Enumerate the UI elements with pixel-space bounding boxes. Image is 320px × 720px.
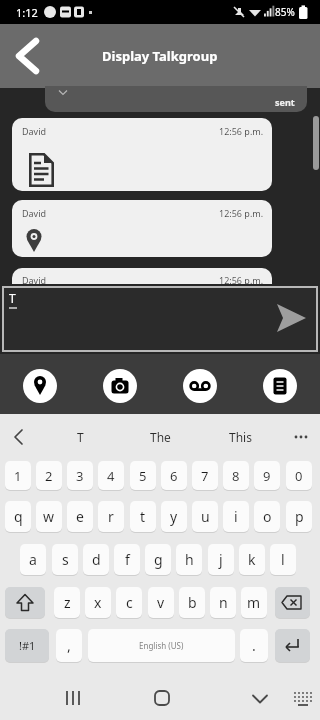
staticText: David — [22, 125, 47, 137]
button[interactable] — [5, 587, 45, 618]
button[interactable] — [254, 461, 280, 490]
staticText: 85% — [275, 5, 295, 19]
button[interactable] — [286, 461, 312, 490]
button[interactable] — [286, 501, 312, 532]
button[interactable] — [145, 544, 171, 575]
staticText: 1 — [14, 467, 22, 485]
button[interactable] — [239, 544, 265, 575]
button[interactable] — [263, 369, 297, 403]
button[interactable] — [130, 461, 156, 490]
button[interactable] — [161, 501, 187, 532]
staticText: David — [22, 274, 47, 286]
button[interactable] — [223, 461, 249, 490]
staticText: Display Talkgroup — [102, 47, 218, 65]
button[interactable] — [36, 501, 62, 532]
button[interactable] — [88, 629, 235, 662]
button[interactable] — [275, 587, 310, 618]
button[interactable] — [241, 684, 279, 714]
button[interactable] — [54, 684, 92, 714]
button[interactable] — [288, 684, 318, 714]
staticText: t — [140, 507, 146, 526]
staticText: T — [77, 429, 84, 445]
button[interactable]: David — [12, 268, 272, 308]
staticText: i — [234, 507, 238, 526]
staticText: !#1 — [19, 638, 36, 653]
staticText: David — [22, 207, 47, 219]
staticText: 0 — [295, 467, 303, 485]
button[interactable] — [240, 629, 268, 662]
button[interactable] — [5, 501, 31, 532]
button[interactable] — [98, 501, 124, 532]
button[interactable] — [148, 587, 174, 618]
staticText: The — [150, 429, 171, 445]
button[interactable] — [210, 587, 236, 618]
staticText: . — [252, 636, 256, 655]
staticText: f — [125, 550, 130, 569]
button[interactable]: David — [12, 200, 272, 257]
staticText: v — [157, 593, 165, 612]
button[interactable] — [85, 587, 111, 618]
button[interactable] — [241, 587, 267, 618]
button[interactable] — [288, 424, 316, 450]
button[interactable] — [5, 461, 31, 490]
button[interactable] — [192, 501, 218, 532]
staticText: 5 — [139, 467, 147, 485]
staticText: q — [14, 507, 23, 526]
button[interactable]: David — [12, 118, 272, 191]
staticText: 2 — [45, 467, 53, 485]
button[interactable] — [183, 369, 217, 403]
staticText: 4 — [107, 467, 115, 485]
button[interactable] — [161, 461, 187, 490]
button[interactable] — [208, 544, 234, 575]
staticText: This — [229, 429, 252, 445]
staticText: d — [92, 550, 101, 569]
button[interactable] — [192, 461, 218, 490]
button[interactable] — [52, 544, 78, 575]
staticText: g — [154, 550, 163, 569]
button[interactable] — [4, 424, 34, 450]
button[interactable] — [116, 587, 142, 618]
button[interactable] — [98, 461, 124, 490]
button[interactable] — [179, 587, 205, 618]
staticText: j — [219, 550, 223, 569]
button[interactable] — [114, 544, 140, 575]
button[interactable]: This — [216, 424, 264, 450]
button[interactable] — [54, 587, 80, 618]
staticText: 8 — [232, 467, 240, 485]
button[interactable] — [56, 629, 82, 662]
staticText: k — [248, 550, 256, 569]
staticText: h — [185, 550, 194, 569]
button[interactable] — [223, 501, 249, 532]
button[interactable]: T — [56, 424, 104, 450]
button[interactable] — [275, 629, 310, 662]
button[interactable] — [5, 629, 49, 662]
button[interactable] — [130, 501, 156, 532]
button[interactable] — [176, 544, 202, 575]
button[interactable]: The — [136, 424, 184, 450]
staticText: 12:56 p.m. — [219, 125, 264, 137]
staticText: 12:56 p.m. — [219, 207, 264, 219]
button[interactable] — [83, 544, 109, 575]
staticText: a — [29, 550, 37, 569]
button[interactable] — [272, 298, 312, 338]
button[interactable] — [36, 461, 62, 490]
button[interactable] — [254, 501, 280, 532]
staticText: 6 — [170, 467, 178, 485]
staticText: e — [76, 507, 84, 526]
staticText: T — [9, 290, 16, 306]
staticText: b — [188, 593, 197, 612]
button[interactable] — [143, 684, 181, 714]
button[interactable] — [23, 369, 57, 403]
button[interactable] — [103, 369, 137, 403]
staticText: n — [219, 593, 228, 612]
staticText: 9 — [263, 467, 271, 485]
staticText: o — [263, 507, 272, 526]
button[interactable] — [20, 544, 46, 575]
button[interactable] — [8, 36, 48, 76]
button[interactable] — [67, 461, 93, 490]
staticText: 1:12 — [16, 5, 38, 20]
button[interactable] — [67, 501, 93, 532]
button[interactable]: T — [2, 286, 318, 352]
button[interactable] — [270, 544, 296, 575]
staticText: x — [94, 593, 102, 612]
